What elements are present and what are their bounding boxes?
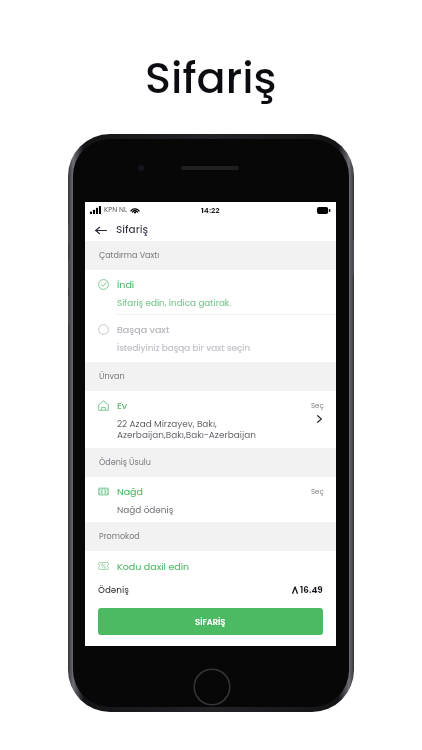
staticText: Sifariş — [145, 48, 277, 108]
button[interactable]: Back — [94, 223, 108, 237]
staticText: 14:22 — [201, 205, 220, 215]
staticText: Promokod — [99, 531, 140, 542]
staticText: Nağd ödəniş — [117, 504, 174, 516]
staticText: Çatdırma Vaxtı — [99, 250, 160, 261]
button[interactable]: Kodu daxil edin — [85, 551, 336, 581]
staticText: İstədiyiniz başqa bir vaxt seçin — [117, 342, 251, 354]
staticText: İndi — [117, 278, 135, 291]
staticText: Sifariş — [116, 222, 149, 237]
staticText: Ev — [117, 399, 128, 412]
staticText: Ödəniş — [98, 584, 130, 596]
staticText: SİFARİŞ — [195, 616, 226, 628]
staticText: Başqa vaxt — [117, 323, 170, 336]
staticText: Kodu daxil edin — [117, 560, 190, 573]
staticText: 22 Azad Mirzayev, Bakı, Azerbaijan,Bakı,… — [117, 418, 256, 441]
staticText: Ünvan — [99, 371, 125, 382]
staticText: Seç — [311, 401, 324, 411]
button[interactable]: Başqa vaxt — [85, 315, 336, 362]
staticText: 16.49 — [300, 584, 323, 596]
staticText: KPN NL — [104, 205, 127, 215]
button[interactable]: Nağd — [85, 477, 336, 522]
button[interactable]: İndi — [85, 270, 336, 315]
staticText: Seç — [311, 487, 324, 497]
staticText: Nağd — [117, 485, 143, 498]
staticText: Sifariş edin, indica gatirak. — [117, 297, 232, 309]
button[interactable]: SİFARİŞ — [98, 608, 323, 635]
staticText: Ödəniş Üsulu — [99, 457, 151, 468]
button[interactable]: Ev — [85, 391, 336, 448]
